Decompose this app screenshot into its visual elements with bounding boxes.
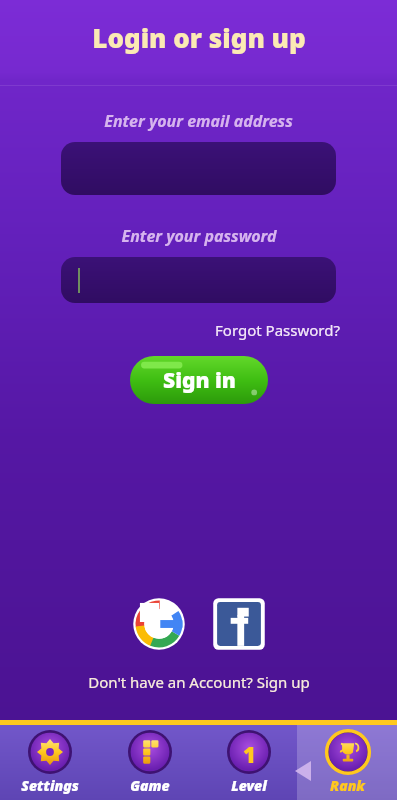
staticText: Rank bbox=[330, 776, 365, 795]
button[interactable]: Sign in with Facebook bbox=[211, 596, 267, 652]
staticText: Sign in bbox=[163, 366, 236, 395]
button[interactable]: Settings bbox=[0, 725, 100, 800]
button[interactable]: Sign in bbox=[130, 356, 268, 404]
button[interactable]: Password field bbox=[61, 257, 336, 303]
staticText: Game bbox=[130, 776, 170, 795]
button[interactable]: Sign in with Google bbox=[131, 596, 187, 652]
button[interactable]: Game bbox=[100, 725, 199, 800]
button[interactable]: 1 bbox=[199, 725, 298, 800]
staticText: Level bbox=[231, 776, 267, 795]
staticText: Enter your email address bbox=[104, 110, 293, 132]
staticText: Forgot Password? bbox=[215, 320, 340, 340]
staticText: Settings bbox=[21, 776, 79, 795]
button[interactable]: Forgot Password? bbox=[212, 317, 343, 343]
staticText: Login or sign up bbox=[92, 20, 306, 55]
staticText: Enter your password bbox=[121, 225, 277, 247]
button[interactable]: Email address field bbox=[61, 142, 336, 195]
button[interactable]: Don't have an Account? Sign up bbox=[84, 668, 314, 696]
staticText: Don't have an Account? Sign up bbox=[88, 672, 310, 692]
staticText: 1 bbox=[243, 739, 256, 765]
button[interactable]: Rank bbox=[298, 725, 397, 800]
